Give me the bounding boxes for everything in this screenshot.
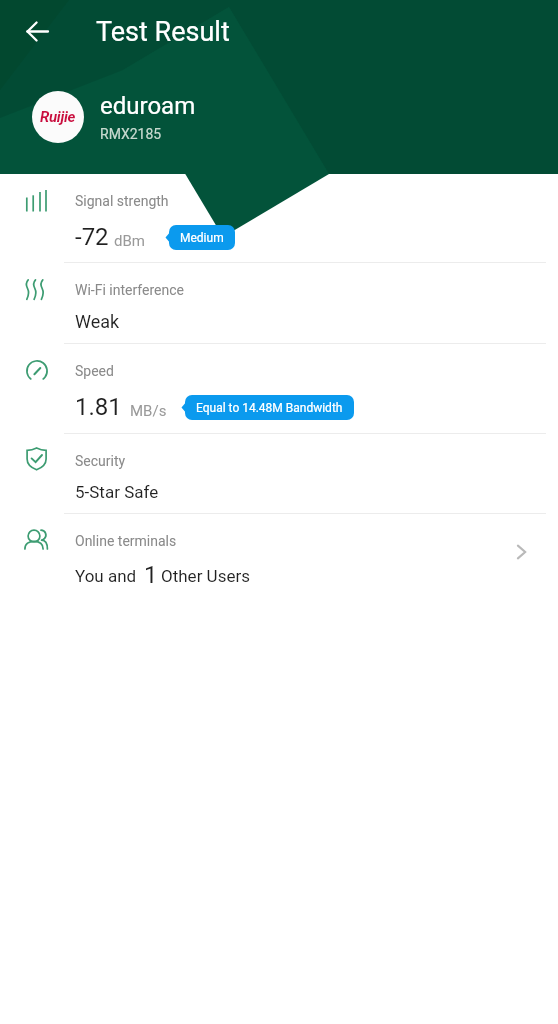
staticText: Equal to 14.48M Bandwidth <box>196 401 343 415</box>
staticText: 5-Star Safe <box>75 482 159 502</box>
staticText: RMX2185 <box>100 126 162 142</box>
button[interactable]: Online terminals <box>0 514 558 602</box>
button[interactable]: Speed <box>0 344 558 434</box>
staticText: eduroam <box>100 92 196 120</box>
staticText: 1.81 <box>75 393 122 421</box>
button[interactable]: Security <box>0 434 558 514</box>
staticText: Speed <box>75 363 114 379</box>
button[interactable]: Wi-Fi interference <box>0 263 558 344</box>
staticText: Ruijie <box>40 108 76 126</box>
button[interactable]: Signal strength <box>0 174 558 263</box>
staticText: Signal strength <box>75 193 169 209</box>
staticText: Medium <box>180 231 224 245</box>
staticText: dBm <box>114 232 145 250</box>
staticText: MB/s <box>130 402 167 420</box>
staticText: -72 <box>75 223 109 251</box>
staticText: Test Result <box>96 16 230 48</box>
button[interactable]: Back <box>15 9 59 53</box>
staticText: Online terminals <box>75 533 177 549</box>
staticText: Weak <box>75 311 120 332</box>
staticText: Wi-Fi interference <box>75 282 184 298</box>
staticText: You and <box>75 566 137 586</box>
staticText: Security <box>75 453 126 469</box>
staticText: 1 <box>144 561 158 589</box>
staticText: Other Users <box>161 566 250 586</box>
